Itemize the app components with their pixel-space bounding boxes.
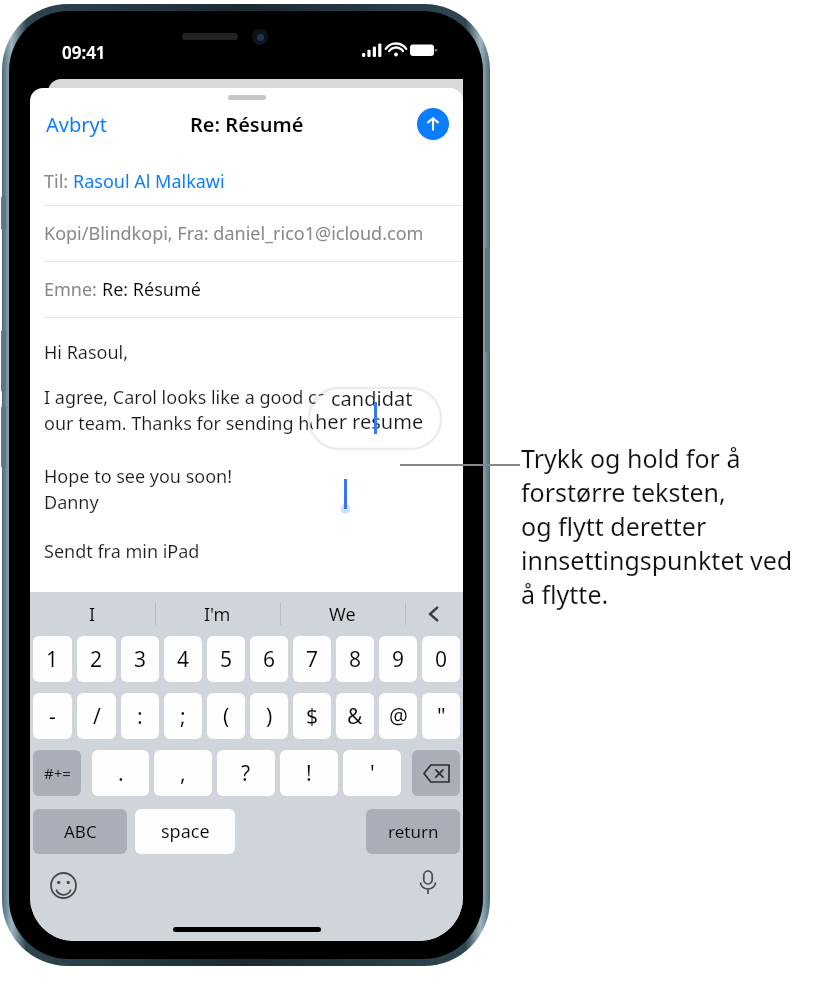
staticText: $ — [306, 702, 319, 731]
staticText: ! — [306, 759, 312, 788]
button[interactable]: Avbryt — [44, 107, 109, 142]
button[interactable]: I'm — [155, 592, 280, 636]
staticText: @ — [389, 702, 408, 731]
staticText: Rasoul Al Malkawi — [73, 169, 225, 194]
button[interactable]: Hide suggestions — [405, 592, 463, 636]
button[interactable]: . — [92, 750, 149, 796]
staticText: her resume — [315, 408, 424, 435]
staticText: return — [388, 820, 439, 843]
button[interactable]: Emoji — [46, 868, 80, 902]
staticText: ; — [180, 702, 186, 731]
staticText: ( — [223, 702, 230, 731]
staticText: Hi Rasoul, — [44, 340, 129, 365]
staticText: . — [118, 759, 124, 788]
staticText: Kopi/Blindkopi, Fra: daniel_rico1@icloud… — [44, 221, 424, 246]
button[interactable]: #+= — [33, 750, 81, 796]
staticText: 6 — [263, 645, 276, 674]
button[interactable]: - — [33, 693, 72, 739]
button[interactable]: , — [154, 750, 212, 796]
button[interactable]: Delete — [412, 750, 460, 796]
button[interactable]: Dictation — [411, 866, 445, 900]
button[interactable]: 3 — [121, 636, 159, 682]
button[interactable]: Send — [417, 108, 449, 140]
button[interactable]: : — [121, 693, 159, 739]
button[interactable]: 0 — [422, 636, 460, 682]
button[interactable]: 6 — [250, 636, 288, 682]
button[interactable]: 1 — [33, 636, 72, 682]
staticText: 2 — [90, 645, 103, 674]
button[interactable]: / — [77, 693, 116, 739]
staticText: ? — [241, 759, 251, 788]
button[interactable]: ! — [280, 750, 338, 796]
staticText: 9 — [392, 645, 405, 674]
button[interactable]: @ — [379, 693, 417, 739]
staticText: #+= — [44, 763, 71, 783]
staticText: - — [49, 702, 56, 731]
button[interactable]: Kopi/Blindkopi, Fra: daniel_rico1@icloud… — [30, 206, 463, 261]
button[interactable]: $ — [293, 693, 331, 739]
staticText: " — [437, 702, 446, 731]
staticText: Sendt fra min iPad — [44, 539, 200, 564]
staticText: ) — [266, 702, 273, 731]
button[interactable]: return — [366, 809, 460, 854]
staticText: I'm — [204, 602, 231, 627]
staticText: I — [89, 602, 96, 627]
button[interactable]: 7 — [293, 636, 331, 682]
button[interactable]: Til: — [30, 150, 463, 205]
staticText: Re: Résumé — [102, 277, 201, 302]
button[interactable]: " — [422, 693, 460, 739]
button[interactable]: 5 — [207, 636, 245, 682]
button[interactable]: ) — [250, 693, 288, 739]
button[interactable]: We — [280, 592, 405, 636]
staticText: 4 — [177, 645, 190, 674]
staticText: space — [161, 819, 210, 844]
staticText: & — [347, 702, 363, 731]
button[interactable]: 4 — [164, 636, 202, 682]
staticText: Hope to see you soon! Danny — [44, 464, 233, 515]
button[interactable]: Emne: — [30, 262, 463, 317]
staticText: 7 — [306, 645, 319, 674]
staticText: 0 — [435, 645, 448, 674]
staticText: We — [329, 602, 356, 627]
staticText: 1 — [46, 645, 59, 674]
button[interactable]: 2 — [77, 636, 116, 682]
button[interactable]: ( — [207, 693, 245, 739]
staticText: , — [180, 759, 186, 788]
button[interactable]: space — [135, 809, 235, 854]
button[interactable]: & — [336, 693, 374, 739]
staticText: / — [93, 702, 101, 731]
button[interactable]: ABC — [33, 809, 127, 854]
button[interactable]: 9 — [379, 636, 417, 682]
staticText: Trykk og hold for å forstørre teksten, o… — [521, 441, 817, 611]
button[interactable]: I — [30, 592, 155, 636]
staticText: Til: — [44, 169, 73, 194]
staticText: I agree, Carol looks like a good candida… — [44, 385, 421, 436]
staticText: ' — [370, 759, 375, 788]
staticText: Re: Résumé — [190, 111, 304, 138]
staticText: candidat — [331, 390, 413, 412]
staticText: : — [137, 702, 143, 731]
staticText: 3 — [134, 645, 147, 674]
staticText: 8 — [349, 645, 362, 674]
staticText: Emne: — [44, 277, 102, 302]
button[interactable]: ; — [164, 693, 202, 739]
staticText: 5 — [220, 645, 233, 674]
staticText: 09:41 — [62, 41, 106, 64]
staticText: Avbryt — [46, 111, 107, 138]
button[interactable]: ? — [217, 750, 275, 796]
button[interactable]: ' — [343, 750, 401, 796]
staticText: ABC — [64, 820, 97, 843]
button[interactable]: 8 — [336, 636, 374, 682]
